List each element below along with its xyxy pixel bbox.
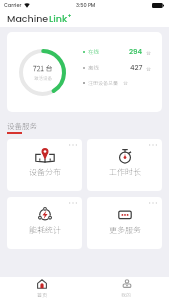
staticText: 427 xyxy=(130,63,143,73)
button[interactable]: 工作时长 xyxy=(87,139,162,191)
staticText: 我的 xyxy=(121,291,132,298)
staticText: Carrier xyxy=(4,2,22,9)
staticText: 台 xyxy=(146,49,152,56)
staticText: 更多服务 xyxy=(109,224,141,236)
staticText: Machine xyxy=(7,12,49,25)
button[interactable]: 我的 xyxy=(84,277,169,300)
staticText: 首页 xyxy=(37,291,48,298)
staticText: Link xyxy=(49,12,68,25)
button[interactable]: 更多服务 xyxy=(87,197,162,249)
staticText: 在线 xyxy=(88,48,100,56)
button[interactable]: 能耗统计 xyxy=(7,197,82,249)
staticText: 台 xyxy=(123,79,129,86)
staticText: 设备分布 xyxy=(29,166,61,178)
staticText: 294 xyxy=(129,47,143,57)
staticText: 能耗统计 xyxy=(29,224,61,236)
staticText: 721 台 xyxy=(33,63,53,73)
staticText: 工作时长 xyxy=(109,166,141,178)
staticText: 设备服务 xyxy=(7,120,37,131)
button[interactable]: 设备分布 xyxy=(7,139,82,191)
staticText: 3:50 PM xyxy=(76,2,96,9)
staticText: 离线 xyxy=(88,64,100,72)
staticText: 注册设备总量 xyxy=(88,79,119,86)
button[interactable]: 首页 xyxy=(0,277,84,300)
staticText: 激活设备 xyxy=(34,75,52,82)
staticText: 台 xyxy=(146,65,152,72)
staticText: + xyxy=(68,13,72,20)
